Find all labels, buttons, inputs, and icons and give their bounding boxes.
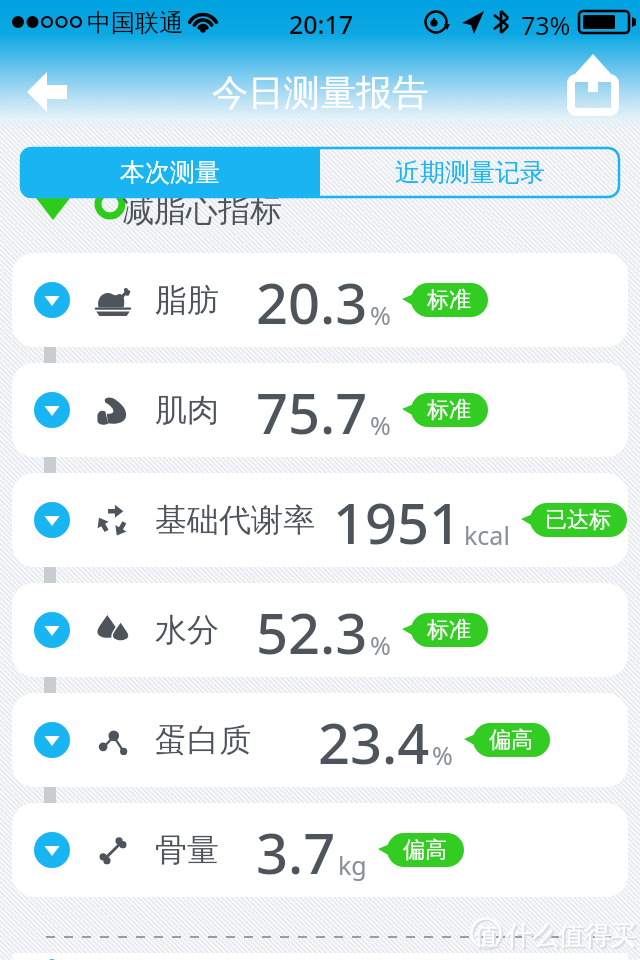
staticText: 蛋白质 <box>155 720 251 760</box>
staticText: 什么值得买 <box>508 921 638 954</box>
button[interactable]: 分享 <box>550 52 640 132</box>
staticText: 标准 <box>427 396 471 424</box>
staticText: 值 <box>474 921 498 951</box>
staticText: 骨量 <box>155 830 219 870</box>
staticText: 脂肪 <box>155 280 219 320</box>
button[interactable]: 近期测量记录 <box>320 147 620 198</box>
staticText: 偏高 <box>403 836 447 864</box>
staticText: 什么值得买 <box>506 919 636 952</box>
staticText: % <box>370 628 391 662</box>
staticText: 偏高 <box>489 726 533 754</box>
staticText: 已达标 <box>545 506 611 534</box>
button[interactable]: 肌肉 <box>12 363 628 457</box>
staticText: 20:17 <box>289 7 354 41</box>
button[interactable]: 骨量 <box>12 803 628 897</box>
staticText: 20.3 <box>256 264 368 340</box>
staticText: 本次测量 <box>120 157 220 188</box>
button[interactable]: 蛋白质 <box>12 693 628 787</box>
staticText: 1951 <box>333 484 462 560</box>
staticText: 基础代谢率 <box>155 500 315 540</box>
staticText: % <box>370 408 391 442</box>
button[interactable]: 水分 <box>12 583 628 677</box>
staticText: 52.3 <box>256 594 368 670</box>
staticText: 3.7 <box>256 814 336 890</box>
staticText: 中国联通 <box>87 8 183 38</box>
staticText: 75.7 <box>256 374 368 450</box>
button[interactable]: 脂肪 <box>12 253 628 347</box>
staticText: 73% <box>521 8 571 42</box>
staticText: 水分 <box>155 610 219 650</box>
staticText: 值 <box>476 923 500 953</box>
staticText: 肌肉 <box>155 390 219 430</box>
button[interactable]: 本次测量 <box>20 147 320 198</box>
staticText: kg <box>338 848 367 882</box>
button[interactable]: 返回 <box>4 52 94 132</box>
staticText: 今日测量报告 <box>212 70 428 115</box>
staticText: 标准 <box>427 616 471 644</box>
staticText: % <box>370 298 391 332</box>
staticText: 近期测量记录 <box>395 157 545 188</box>
staticText: 23.4 <box>318 704 430 780</box>
staticText: kcal <box>464 518 510 552</box>
staticText: 减脂心指标 <box>122 190 282 230</box>
staticText: % <box>432 738 453 772</box>
staticText: 标准 <box>427 286 471 314</box>
button[interactable]: 基础代谢率 <box>12 473 628 567</box>
